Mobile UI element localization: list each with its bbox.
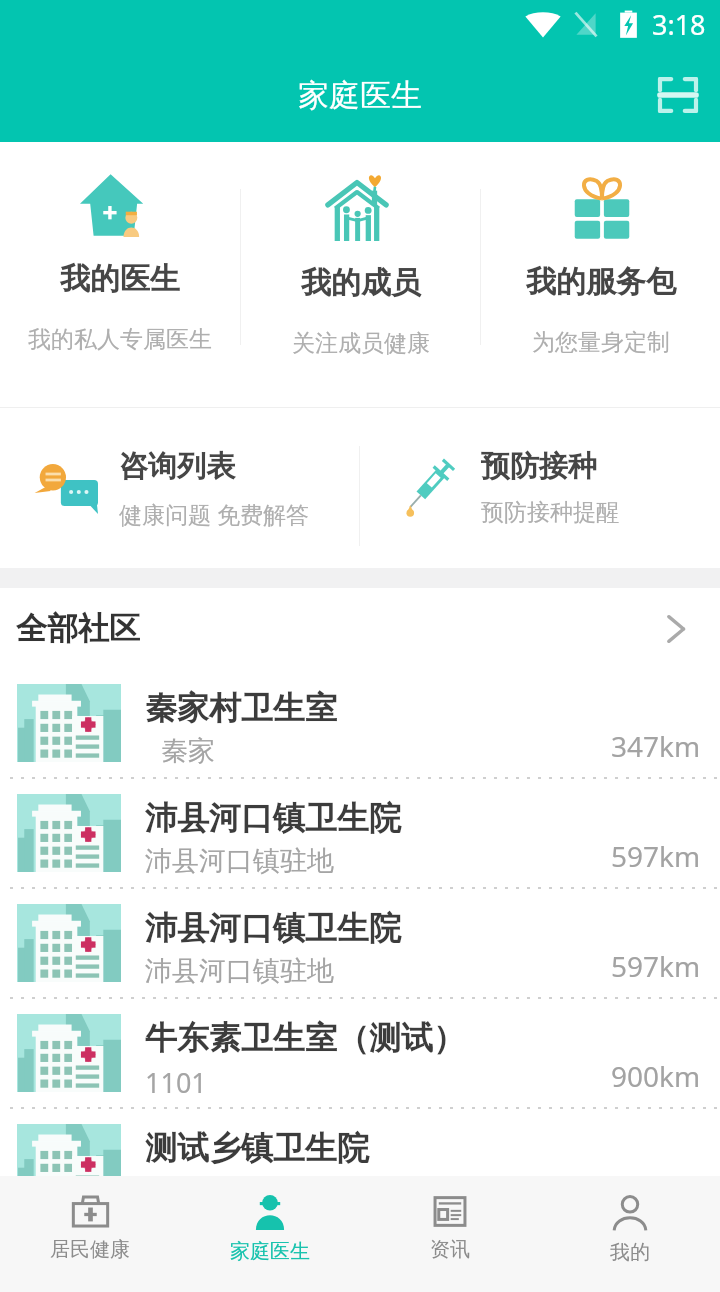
button[interactable]: 我的	[540, 1176, 720, 1292]
staticText: 597km	[611, 837, 701, 875]
staticText: 预防接种提醒	[481, 498, 619, 527]
staticText: 我的	[610, 1240, 650, 1265]
staticText: 资讯	[430, 1237, 470, 1262]
staticText: 秦家	[161, 734, 215, 768]
staticText: 秦家村卫生室	[145, 688, 337, 728]
staticText: 居民健康	[50, 1237, 130, 1262]
button[interactable]: 沛县河口镇卫生院	[0, 779, 720, 887]
button[interactable]: 我的成员	[241, 142, 480, 407]
button[interactable]: 预防接种	[360, 408, 720, 568]
button[interactable]: 秦家村卫生室	[0, 669, 720, 777]
button[interactable]: Scan	[652, 69, 704, 121]
staticText: 预防接种	[481, 448, 597, 485]
staticText: 沛县河口镇卫生院	[145, 908, 401, 948]
button[interactable]: 居民健康	[0, 1176, 180, 1292]
button[interactable]: 牛东素卫生室（测试）	[0, 999, 720, 1107]
staticText: 我的医生	[60, 260, 180, 298]
button[interactable]: 咨询列表	[0, 408, 359, 568]
staticText: 900km	[611, 1057, 701, 1095]
staticText: 测试乡镇卫生院	[145, 1128, 369, 1168]
staticText: 1101	[145, 1064, 207, 1101]
button[interactable]: 我的服务包	[481, 142, 720, 407]
button[interactable]: 全部社区	[0, 588, 720, 669]
button[interactable]: 家庭医生	[180, 1176, 360, 1292]
button[interactable]: 资讯	[360, 1176, 540, 1292]
button[interactable]: 测试乡镇卫生院	[0, 1109, 720, 1217]
button[interactable]: 我的医生	[0, 142, 240, 407]
staticText: 我的服务包	[526, 263, 676, 301]
staticText: 我的私人专属医生	[28, 325, 212, 354]
button[interactable]: 沛县河口镇卫生院	[0, 889, 720, 997]
staticText: 沛县河口镇驻地	[145, 844, 334, 878]
staticText: 3:18	[652, 6, 706, 43]
staticText: 沛县河口镇驻地	[145, 954, 334, 988]
staticText: 家庭医生	[230, 1239, 310, 1264]
staticText: 关注成员健康	[292, 329, 430, 358]
staticText: 597km	[611, 947, 701, 985]
staticText: 全部社区	[16, 609, 140, 648]
staticText: 牛东素卫生室（测试）	[145, 1018, 465, 1058]
staticText: 咨询列表	[119, 448, 235, 485]
staticText: 健康问题 免费解答	[119, 498, 309, 529]
staticText: 347km	[611, 727, 701, 765]
staticText: 沛县河口镇卫生院	[145, 798, 401, 838]
staticText: 我的成员	[301, 264, 421, 302]
staticText: 家庭医生	[298, 76, 422, 115]
staticText: 为您量身定制	[532, 328, 670, 357]
